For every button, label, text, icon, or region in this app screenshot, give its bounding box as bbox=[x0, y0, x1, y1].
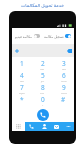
staticText: 8 bbox=[41, 83, 45, 92]
staticText: GHI bbox=[20, 80, 24, 83]
button[interactable]: 7 bbox=[12, 83, 32, 95]
button[interactable]: Add number bbox=[13, 47, 21, 55]
button[interactable]: More bbox=[62, 122, 74, 131]
button[interactable]: Keypad bbox=[12, 122, 25, 131]
button[interactable]: Calls bbox=[25, 122, 38, 131]
staticText: JKL bbox=[41, 80, 45, 83]
staticText: 5 bbox=[41, 71, 45, 80]
staticText: 3 bbox=[62, 59, 66, 68]
button[interactable]: * bbox=[12, 95, 32, 107]
button[interactable]: 1 bbox=[12, 59, 32, 71]
staticText: PQRS bbox=[19, 92, 25, 95]
staticText: تسجيل مكالمة bbox=[44, 34, 64, 38]
staticText: + bbox=[42, 104, 44, 107]
button[interactable]: Backspace bbox=[65, 47, 73, 55]
button[interactable]: 0 bbox=[32, 95, 53, 107]
staticText: 7 bbox=[20, 83, 24, 92]
staticText: WXYZ bbox=[61, 92, 67, 95]
staticText: خدمة تحويل المكالمات bbox=[21, 2, 64, 8]
button[interactable]: Call bbox=[37, 109, 49, 121]
staticText: مكالمة فيديو bbox=[15, 34, 33, 38]
staticText: 1 bbox=[20, 59, 24, 68]
staticText: 0 bbox=[41, 95, 45, 104]
button[interactable]: Messages bbox=[50, 122, 62, 131]
button[interactable]: مكالمة فيديو bbox=[12, 28, 40, 44]
staticText: 4 bbox=[20, 71, 24, 80]
staticText: # bbox=[61, 95, 66, 104]
staticText: DEF bbox=[62, 68, 66, 71]
staticText: TUV bbox=[40, 92, 45, 95]
button[interactable]: # bbox=[53, 95, 74, 107]
button[interactable]: 6 bbox=[53, 71, 74, 83]
button[interactable]: Contacts bbox=[38, 122, 50, 131]
button[interactable]: 4 bbox=[12, 71, 32, 83]
staticText: 9 bbox=[62, 83, 66, 92]
staticText: MNO bbox=[61, 80, 67, 83]
staticText: ABC bbox=[40, 68, 45, 71]
button[interactable]: 2 bbox=[32, 59, 53, 71]
button[interactable]: 5 bbox=[32, 71, 53, 83]
button[interactable]: 8 bbox=[32, 83, 53, 95]
button[interactable]: 9 bbox=[53, 83, 74, 95]
staticText: 2 bbox=[41, 59, 45, 68]
staticText: 6 bbox=[62, 71, 66, 80]
staticText: * bbox=[20, 95, 24, 104]
button[interactable]: تسجيل مكالمة bbox=[43, 28, 71, 44]
button[interactable]: 3 bbox=[53, 59, 74, 71]
